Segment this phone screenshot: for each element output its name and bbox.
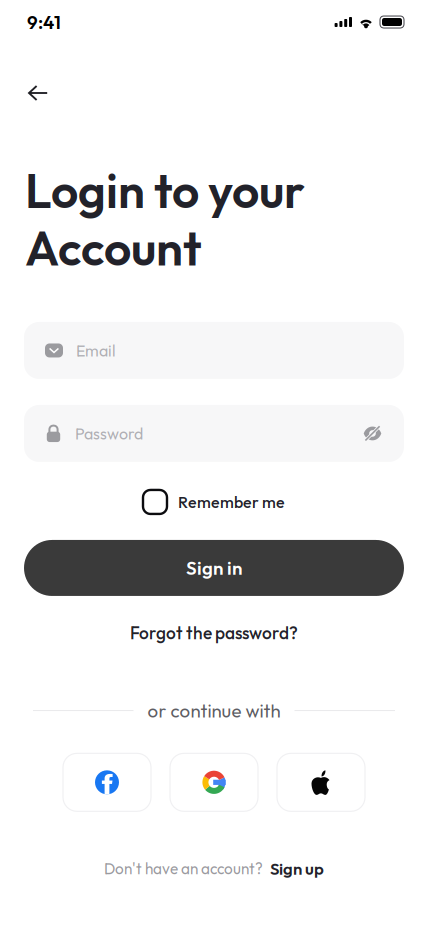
button[interactable]: Continue with Facebook (63, 753, 151, 811)
staticText: Sign in (186, 556, 242, 580)
staticText: Forgot the password? (130, 622, 298, 644)
staticText: Account (25, 217, 202, 278)
staticText: Remember me (178, 492, 285, 512)
button[interactable]: Remember me (143, 490, 285, 514)
staticText: Don't have an account? (104, 859, 263, 878)
button[interactable]: Show password (359, 421, 386, 445)
button[interactable]: Sign in (24, 540, 404, 596)
button[interactable]: Sign up (270, 858, 324, 879)
staticText: Password (75, 423, 143, 444)
staticText: Email (76, 340, 116, 361)
button[interactable]: Continue with Google (170, 753, 258, 811)
button[interactable]: Back (14, 71, 62, 115)
staticText: or continue with (147, 699, 280, 722)
staticText: Sign up (270, 858, 324, 879)
staticText: 9:41 (27, 10, 61, 34)
button[interactable]: Continue with Apple (277, 753, 365, 811)
button[interactable]: Forgot the password? (130, 618, 298, 648)
staticText: Login to your (25, 160, 305, 220)
